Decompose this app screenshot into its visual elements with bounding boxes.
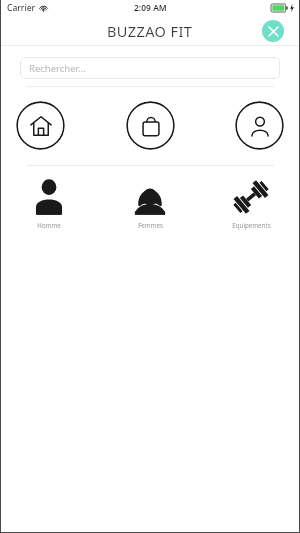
staticText: Carrier xyxy=(7,2,36,14)
button[interactable]: Rechercher... xyxy=(20,57,280,79)
button[interactable]: Account xyxy=(235,101,284,150)
staticText: BUZZAO FIT xyxy=(107,21,193,41)
staticText: Rechercher... xyxy=(29,62,86,75)
button[interactable]: Close xyxy=(262,20,284,42)
button[interactable]: Homme xyxy=(14,176,84,229)
button[interactable]: Shop xyxy=(126,101,175,150)
button[interactable]: Femmes xyxy=(115,176,185,229)
staticText: Homme xyxy=(37,221,61,229)
button[interactable]: Equipements xyxy=(216,176,286,229)
staticText: Femmes xyxy=(138,221,163,229)
staticText: 2:09 AM xyxy=(134,2,167,14)
button[interactable]: Home xyxy=(16,101,65,150)
staticText: Equipements xyxy=(232,221,271,229)
